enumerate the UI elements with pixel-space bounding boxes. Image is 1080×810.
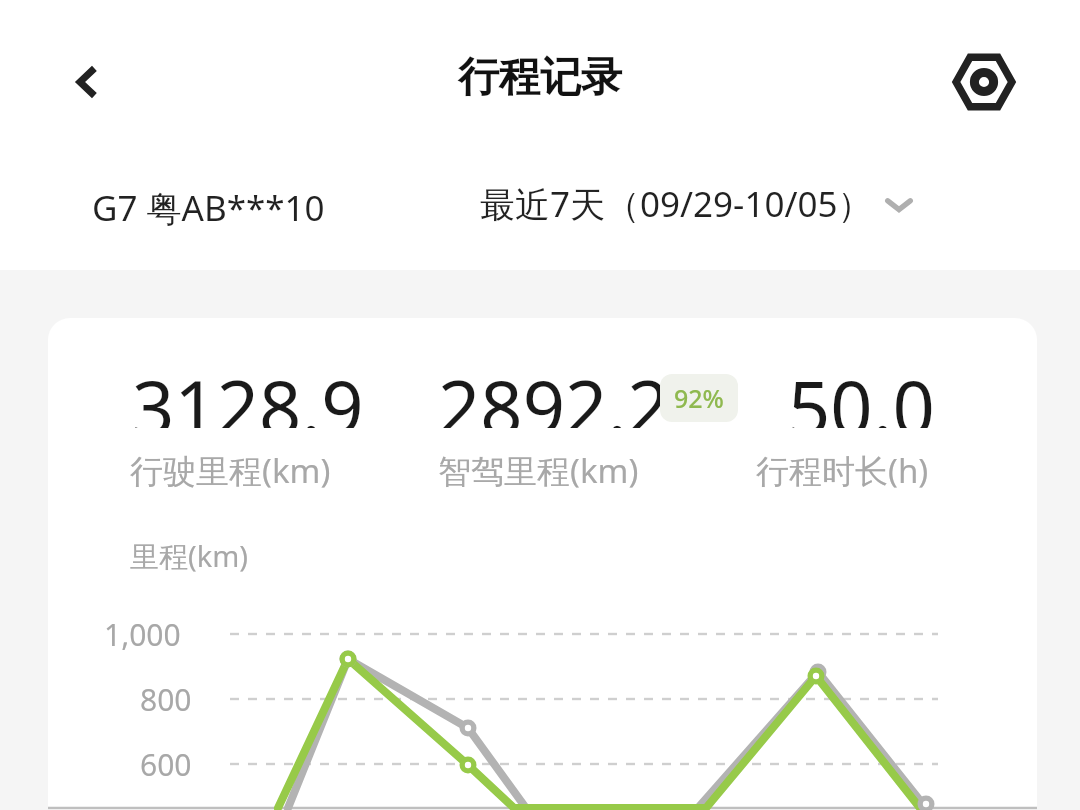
button[interactable]: Settings [944,42,1024,122]
staticText: 行驶里程(km) [130,448,331,493]
button[interactable]: 最近7天（09/29-10/05） [480,180,919,228]
staticText: 600 [140,744,192,785]
button[interactable]: G7 粤AB***10 [92,184,325,232]
staticText: 行程记录 [0,52,1080,104]
staticText: 800 [140,679,192,720]
staticText: 50.0 [788,356,935,428]
staticText: 2892.2 [438,356,670,428]
staticText: 1,000 [104,614,181,655]
staticText: 里程(km) [130,536,249,576]
staticText: 行程时长(h) [756,448,929,493]
staticText: 最近7天（09/29-10/05） [480,180,873,228]
staticText: 3128.9 [132,356,364,428]
button[interactable]: Back [48,42,128,122]
staticText: 智驾里程(km) [438,448,639,493]
staticText: 92% [674,381,724,415]
